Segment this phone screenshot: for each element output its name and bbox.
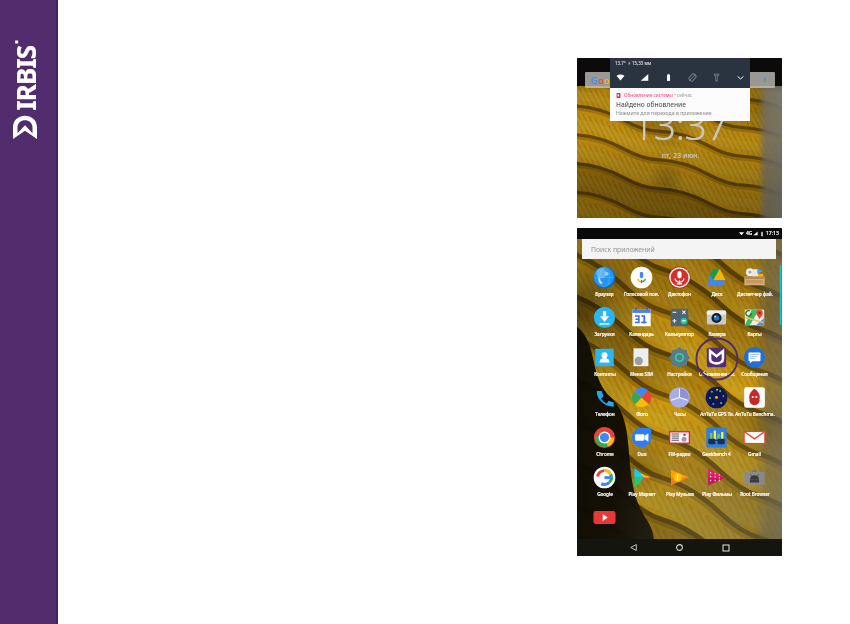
staticText: 17:13	[766, 230, 779, 237]
staticText: Обновление си.	[699, 371, 735, 377]
staticText: Сообщения	[741, 371, 768, 377]
staticText: 4G	[746, 230, 753, 237]
staticText: Root Browser	[740, 491, 770, 497]
button[interactable]: Настройки	[655, 346, 704, 377]
staticText: Диспетчер фай.	[737, 291, 773, 297]
staticText: Браузер	[595, 291, 614, 297]
button[interactable]	[580, 506, 629, 531]
button[interactable]: Карты	[730, 306, 779, 337]
staticText: Диск	[711, 291, 723, 297]
staticText: 13:37	[632, 98, 729, 151]
button[interactable]: Root Browser	[730, 466, 779, 497]
button[interactable]: Фото	[617, 386, 666, 417]
staticText: Нажмите для перехода в приложение	[616, 109, 712, 116]
staticText: Фото	[636, 411, 648, 417]
button[interactable]: Обновление системы	[610, 88, 750, 121]
button[interactable]: Back	[625, 539, 642, 556]
button[interactable]: Home	[671, 539, 688, 556]
staticText: Duo	[637, 451, 647, 457]
button[interactable]: Обновление си.	[692, 346, 741, 377]
button[interactable]: Часы	[655, 386, 704, 417]
staticText: Geekbench 4	[702, 451, 731, 457]
staticText: FM-радио	[668, 451, 691, 457]
staticText: l	[616, 74, 619, 86]
staticText: Часы	[674, 411, 686, 417]
staticText: Калькулятор	[665, 331, 694, 337]
button[interactable]: Поиск приложений	[582, 239, 776, 259]
staticText: Загрузки	[594, 331, 615, 337]
button[interactable]: Калькулятор	[655, 306, 704, 337]
button[interactable]: Голосовой пои.	[617, 266, 666, 297]
staticText: Меню SIM	[630, 371, 653, 377]
button[interactable]: Play Маркет	[617, 466, 666, 497]
staticText: Play Фильмы	[702, 491, 732, 497]
button[interactable]: Диск	[692, 266, 741, 297]
staticText: 13.7° ⚡ 15,33 мм	[615, 60, 652, 66]
staticText: IRBIS	[7, 45, 41, 110]
staticText: Обновление системы	[624, 92, 673, 98]
staticText: Найдено обновление	[616, 100, 686, 109]
staticText: пт, 23 июн.	[662, 151, 700, 160]
staticText: • сейчас	[673, 92, 693, 98]
staticText: G	[591, 74, 598, 86]
button[interactable]: FM-радио	[655, 426, 704, 457]
button[interactable]: Recent apps	[717, 539, 734, 556]
staticText: Карты	[747, 331, 762, 337]
staticText: Камера	[708, 331, 726, 337]
staticText: Календарь	[629, 331, 654, 337]
button[interactable]: Google	[580, 466, 629, 497]
staticText: AnTuTu GPS Te.	[700, 411, 734, 417]
button[interactable]: G	[585, 72, 775, 88]
button[interactable]: Play Музыка	[655, 466, 704, 497]
button[interactable]: Диктофон	[655, 266, 704, 297]
staticText: e	[619, 74, 625, 86]
button[interactable]: AnTuTu Benchma.	[730, 386, 779, 417]
staticText: Голосовой пои.	[624, 291, 659, 297]
button[interactable]: Загрузки	[580, 306, 629, 337]
staticText: AnTuTu Benchma.	[735, 411, 775, 417]
button[interactable]: Телефон	[580, 386, 629, 417]
button[interactable]: Duo	[617, 426, 666, 457]
button[interactable]: Контакты	[580, 346, 629, 377]
staticText: Chrome	[596, 451, 614, 457]
staticText: o	[598, 74, 604, 86]
button[interactable]: Меню SIM	[617, 346, 666, 377]
staticText: Настройки	[667, 371, 692, 377]
staticText: Google	[597, 491, 613, 497]
staticText: Контакты	[594, 371, 616, 377]
staticText: Gmail	[748, 451, 761, 457]
button[interactable]: AnTuTu GPS Te.	[692, 386, 741, 417]
button[interactable]: Play Фильмы	[692, 466, 741, 497]
staticText: o	[604, 74, 610, 86]
button[interactable]: Сообщения	[730, 346, 779, 377]
button[interactable]: Браузер	[580, 266, 629, 297]
button[interactable]: Geekbench 4	[692, 426, 741, 457]
staticText: Play Музыка	[666, 491, 694, 497]
button[interactable]: Камера	[692, 306, 741, 337]
button[interactable]: Chrome	[580, 426, 629, 457]
staticText: Play Маркет	[628, 491, 656, 497]
button[interactable]: Gmail	[730, 426, 779, 457]
staticText: Поиск приложений	[591, 245, 655, 254]
staticText: Телефон	[595, 411, 615, 417]
button[interactable]: Календарь	[617, 306, 666, 337]
button[interactable]: Диспетчер фай.	[730, 266, 779, 297]
staticText: Диктофон	[668, 291, 691, 297]
